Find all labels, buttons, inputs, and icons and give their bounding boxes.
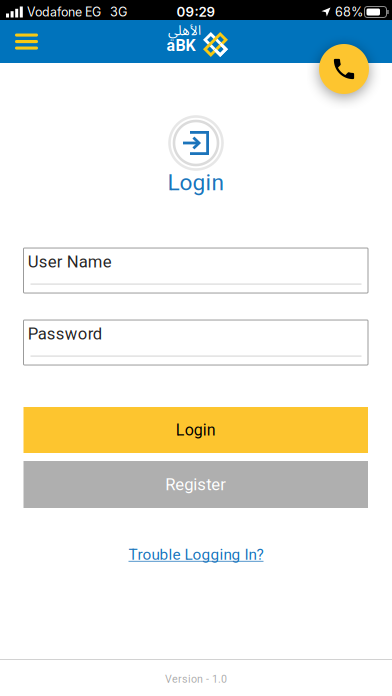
staticText: aBK bbox=[166, 36, 195, 55]
button[interactable]: Trouble Logging In? bbox=[0, 544, 392, 564]
staticText: Trouble Logging In? bbox=[128, 545, 263, 563]
button[interactable]: User Name bbox=[23, 248, 368, 293]
staticText: User Name bbox=[28, 252, 112, 271]
button[interactable]: Menu bbox=[11, 29, 42, 54]
staticText: Vodafone EG bbox=[27, 4, 101, 19]
staticText: Login bbox=[176, 421, 216, 439]
staticText: الأهلي bbox=[167, 17, 200, 45]
staticText: 09:29 bbox=[176, 4, 215, 20]
button[interactable]: Register bbox=[23, 461, 368, 508]
button[interactable]: Password bbox=[23, 320, 368, 365]
staticText: 68% bbox=[335, 4, 363, 20]
staticText: Version - 1.0 bbox=[165, 673, 227, 685]
staticText: Register bbox=[165, 475, 226, 494]
button[interactable]: Login bbox=[23, 407, 368, 453]
staticText: Password bbox=[28, 324, 102, 343]
staticText: Login bbox=[167, 169, 224, 196]
staticText: 3G bbox=[110, 4, 127, 20]
button[interactable]: Call bbox=[319, 44, 369, 94]
